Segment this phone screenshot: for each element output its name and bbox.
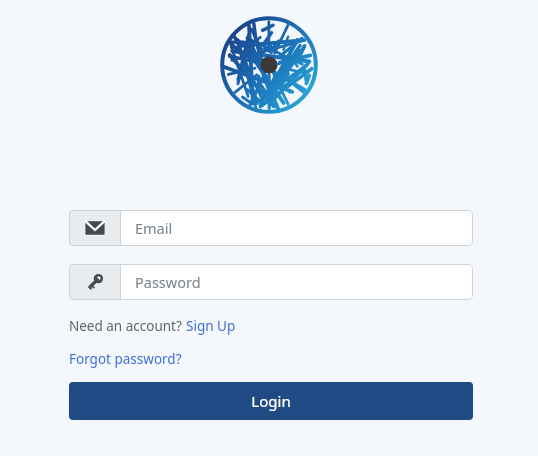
button[interactable]: Email xyxy=(69,210,473,246)
button[interactable]: Password xyxy=(69,264,473,300)
staticText: Email xyxy=(135,218,173,238)
staticText: Sign Up xyxy=(186,317,236,335)
button[interactable]: Forgot password? xyxy=(69,350,182,368)
other: Password xyxy=(69,264,120,300)
button[interactable]: Sign Up xyxy=(186,317,236,335)
staticText: Need an account? xyxy=(69,317,186,335)
staticText: Login xyxy=(251,391,291,411)
button[interactable]: Login xyxy=(69,382,473,420)
staticText: Forgot password? xyxy=(69,350,182,368)
staticText: Password xyxy=(135,272,201,292)
other: Email xyxy=(69,210,120,246)
